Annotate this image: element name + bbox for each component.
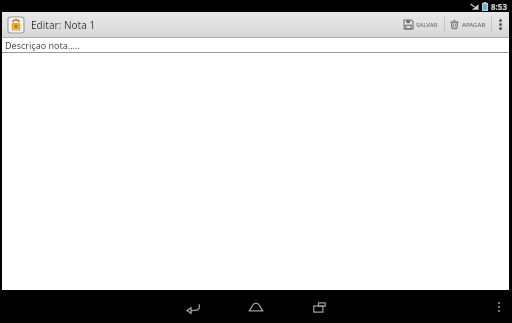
button[interactable]: System menu	[492, 296, 506, 318]
button[interactable]: Descriçao nota.....	[2, 38, 509, 52]
staticText: Editar: Nota 1	[31, 18, 96, 32]
button[interactable]: Back	[176, 293, 210, 321]
staticText: SALVAR	[416, 21, 438, 29]
button[interactable]: SALVAR	[398, 12, 444, 37]
staticText: Descriçao nota.....	[5, 39, 80, 51]
staticText: 8:53	[491, 1, 507, 12]
button[interactable]: Editar: Nota 1	[8, 17, 96, 33]
button[interactable]: Home	[239, 293, 273, 321]
staticText: APAGAR	[462, 21, 486, 29]
button[interactable]: APAGAR	[445, 12, 491, 37]
button[interactable]: Recent apps	[302, 293, 336, 321]
button[interactable]: More options	[492, 12, 509, 37]
